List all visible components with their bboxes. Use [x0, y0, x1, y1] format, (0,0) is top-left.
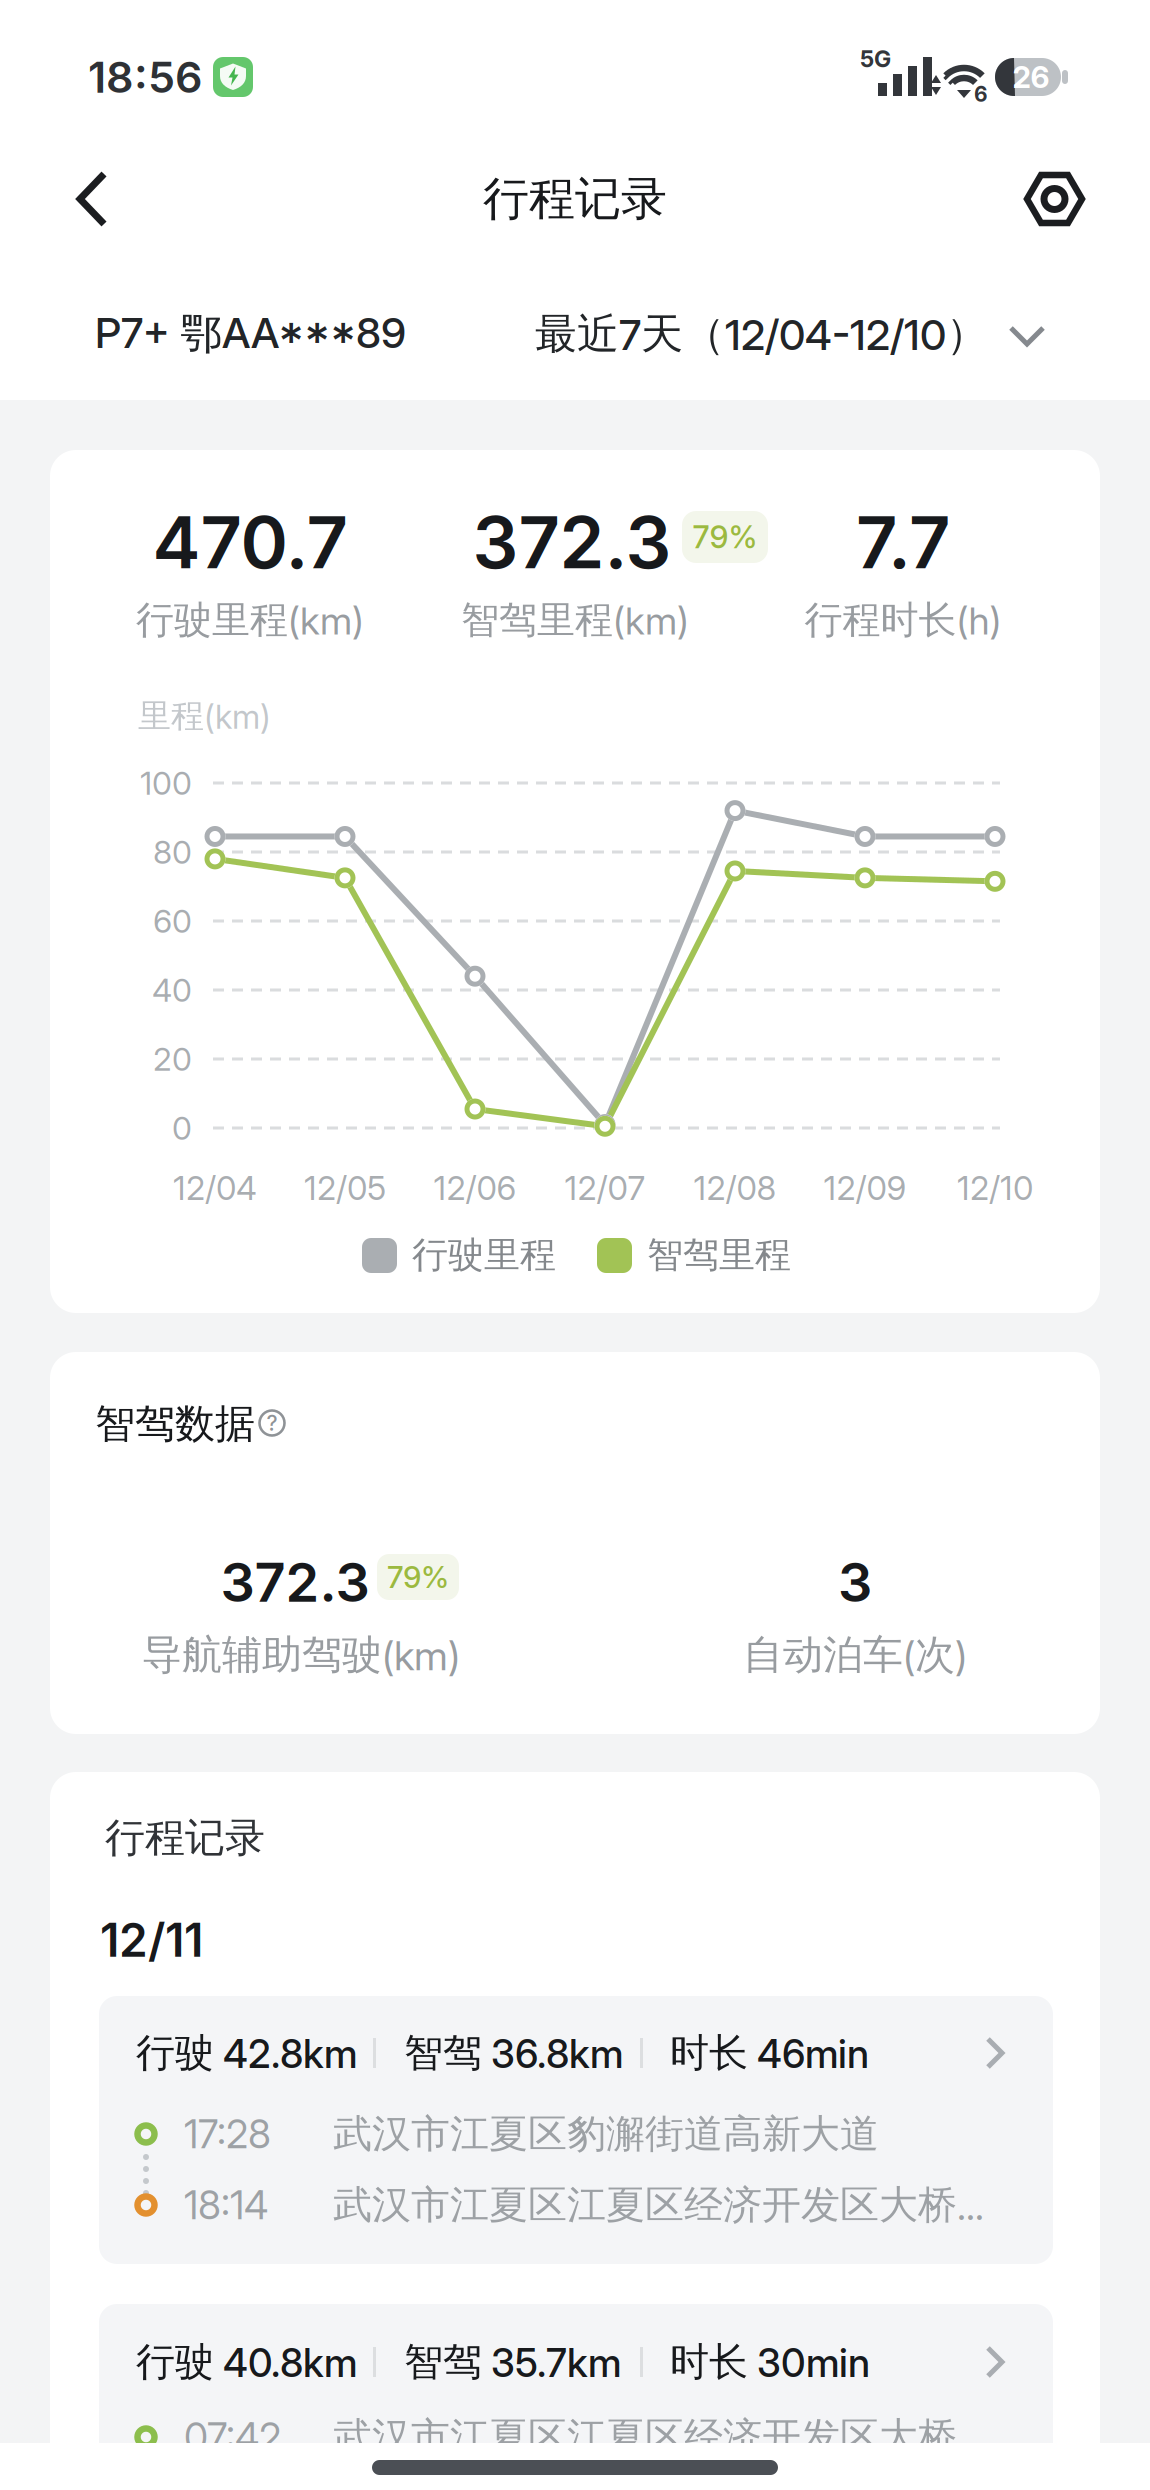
staticText: 智驾里程: [647, 1232, 791, 1278]
staticText: 7.7: [856, 498, 950, 585]
staticText: 时长 46min: [670, 2028, 869, 2077]
staticText: 12/09: [823, 1168, 906, 1208]
staticText: 0: [172, 1109, 192, 1147]
staticText: 12/05: [304, 1168, 386, 1208]
staticText: 里程(km): [138, 695, 271, 737]
staticText: 372.3: [472, 498, 671, 585]
staticText: 智驾 35.7km: [404, 2337, 621, 2386]
staticText: 18:56: [88, 51, 203, 103]
staticText: 行驶里程(km): [136, 596, 364, 644]
staticText: 12/06: [433, 1168, 516, 1208]
staticText: 18:14: [184, 2181, 268, 2229]
staticText: 智驾里程(km): [461, 596, 689, 644]
staticText: 行程记录: [105, 1813, 265, 1863]
staticText: 武汉市江夏区江夏区经济开发区大桥: [333, 2412, 957, 2461]
staticText: P7+ 鄂AA***89: [95, 307, 406, 361]
staticText: 17:28: [184, 2110, 271, 2158]
staticText: 行驶里程: [412, 1232, 556, 1278]
staticText: 80: [153, 833, 192, 871]
staticText: 行驶 40.8km: [136, 2337, 357, 2386]
staticText: 12/08: [693, 1168, 776, 1208]
staticText: 6: [974, 81, 988, 107]
staticText: 5G: [860, 45, 891, 73]
staticText: 470.7: [152, 498, 347, 585]
staticText: 79%: [692, 518, 757, 556]
staticText: 60: [153, 902, 192, 940]
staticText: 12/07: [564, 1168, 645, 1208]
staticText: 武汉市江夏区江夏区经济开发区大桥…: [333, 2180, 984, 2229]
staticText: 3: [838, 1549, 872, 1615]
staticText: 12/10: [957, 1168, 1033, 1208]
staticText: 智驾 36.8km: [404, 2028, 623, 2077]
staticText: 07:42: [184, 2413, 281, 2461]
staticText: 武汉市江夏区豹澥街道高新大道: [333, 2109, 879, 2158]
staticText: 12/04: [173, 1168, 257, 1208]
staticText: 行程记录: [483, 170, 667, 228]
staticText: 自动泊车(次): [743, 1630, 967, 1680]
staticText: 26: [1012, 59, 1049, 95]
staticText: 372.3: [220, 1549, 369, 1615]
staticText: 时长 30min: [670, 2337, 870, 2386]
staticText: 行驶 42.8km: [136, 2028, 357, 2077]
staticText: 20: [153, 1040, 192, 1078]
staticText: 智驾数据: [95, 1399, 255, 1449]
staticText: 导航辅助驾驶(km): [142, 1630, 460, 1680]
staticText: 12/11: [100, 1912, 203, 1968]
staticText: ?: [266, 1410, 277, 1436]
staticText: 100: [140, 764, 192, 802]
staticText: 行程时长(h): [804, 596, 1001, 644]
staticText: 最近7天（12/04-12/10）: [535, 307, 988, 360]
staticText: 40: [152, 971, 192, 1009]
staticText: 79%: [387, 1559, 449, 1595]
